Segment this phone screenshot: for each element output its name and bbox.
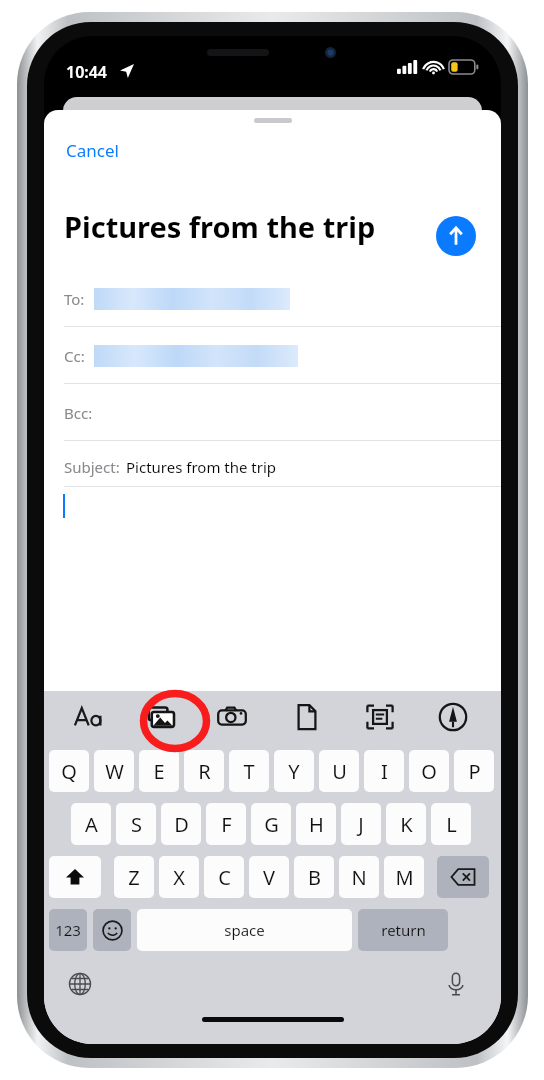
button[interactable]: G [251, 803, 291, 845]
staticText: M [395, 864, 414, 891]
button[interactable]: D [161, 803, 201, 845]
button[interactable]: Send [436, 216, 476, 256]
button[interactable]: space [137, 909, 352, 951]
staticText: G [264, 811, 279, 838]
staticText: H [309, 811, 324, 838]
button[interactable]: K [386, 803, 426, 845]
staticText: Cancel [66, 139, 119, 162]
button[interactable]: Z [114, 856, 154, 898]
button[interactable]: J [341, 803, 381, 845]
staticText: F [221, 811, 232, 838]
staticText: Pictures from the trip [64, 207, 376, 246]
staticText: O [421, 758, 437, 785]
staticText: S [131, 811, 142, 838]
button[interactable]: Switch keyboard [62, 966, 98, 1002]
button[interactable]: Insert photo [139, 700, 185, 734]
staticText: space [224, 920, 265, 940]
button[interactable]: F [206, 803, 246, 845]
staticText: Cc: [64, 346, 94, 366]
button[interactable]: V [249, 856, 289, 898]
button[interactable]: I [364, 750, 404, 792]
staticText: return [381, 920, 426, 940]
staticText: X [173, 864, 185, 891]
button[interactable]: E [139, 750, 179, 792]
button[interactable]: M [384, 856, 424, 898]
button[interactable]: L [431, 803, 471, 845]
staticText: D [174, 811, 189, 838]
button[interactable]: T [229, 750, 269, 792]
staticText: Bcc: [64, 403, 100, 423]
button[interactable]: To: [64, 279, 501, 319]
button[interactable]: Take photo [209, 700, 255, 734]
staticText: W [105, 758, 124, 785]
button[interactable]: Text formatting [66, 700, 112, 734]
staticText: I [381, 758, 388, 785]
button[interactable]: B [294, 856, 334, 898]
staticText: N [351, 864, 367, 891]
staticText: 10:44 [66, 61, 108, 83]
button[interactable]: P [454, 750, 494, 792]
staticText: Y [288, 758, 300, 785]
button[interactable]: N [339, 856, 379, 898]
button[interactable]: O [409, 750, 449, 792]
button[interactable]: Dictation [438, 966, 474, 1002]
button[interactable]: A [71, 803, 111, 845]
staticText: C [218, 864, 231, 891]
button[interactable]: Y [274, 750, 314, 792]
staticText: Q [61, 758, 77, 785]
button[interactable]: H [296, 803, 336, 845]
staticText: Pictures from the trip [126, 457, 277, 477]
staticText: B [308, 864, 321, 891]
button[interactable]: 123 [49, 909, 87, 951]
button[interactable]: Scan document [357, 700, 403, 734]
staticText: V [263, 864, 275, 891]
button[interactable]: X [159, 856, 199, 898]
staticText: E [153, 758, 165, 785]
button[interactable]: Attach document [284, 700, 330, 734]
button[interactable]: Cc: [64, 336, 501, 376]
staticText: P [468, 758, 481, 785]
button[interactable]: Bcc: [64, 393, 501, 433]
button[interactable]: R [184, 750, 224, 792]
button[interactable]: Backspace [437, 856, 489, 898]
button[interactable]: Subject: [64, 450, 501, 484]
staticText: 123 [55, 920, 81, 940]
button[interactable]: Q [49, 750, 89, 792]
button[interactable]: C [204, 856, 244, 898]
staticText: Z [128, 864, 140, 891]
button[interactable]: return [358, 909, 448, 951]
button[interactable]: Markup [430, 700, 476, 734]
button[interactable]: U [319, 750, 359, 792]
staticText: To: [64, 289, 94, 309]
staticText: T [243, 758, 255, 785]
staticText: K [400, 811, 413, 838]
staticText: U [332, 758, 347, 785]
button[interactable]: Cancel [64, 135, 121, 166]
button[interactable]: W [94, 750, 134, 792]
staticText: A [85, 811, 98, 838]
staticText: J [358, 811, 364, 838]
staticText: R [198, 758, 211, 785]
button[interactable]: S [116, 803, 156, 845]
staticText: Subject: [64, 457, 120, 477]
button[interactable]: Emoji [93, 909, 131, 951]
button[interactable]: Shift [49, 856, 101, 898]
staticText: L [446, 811, 457, 838]
